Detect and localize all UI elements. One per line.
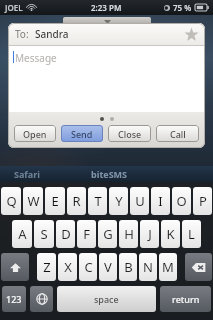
button[interactable]: R [67, 187, 86, 215]
staticText: V [104, 258, 112, 276]
button[interactable]: U [130, 187, 149, 215]
staticText: Call [170, 128, 186, 140]
staticText: E [51, 192, 59, 210]
button[interactable]: Favorite [181, 24, 201, 44]
button[interactable]: Message [8, 46, 205, 112]
staticText: JOEL [5, 2, 23, 13]
button[interactable]: L [182, 220, 201, 248]
button[interactable]: H [119, 220, 138, 248]
button[interactable]: Z [37, 253, 56, 281]
staticText: K [166, 225, 175, 243]
staticText: return [172, 293, 200, 305]
staticText: Z [43, 258, 51, 276]
button[interactable]: F [77, 220, 96, 248]
button[interactable]: D [56, 220, 75, 248]
staticText: Open [23, 128, 47, 140]
button[interactable]: Call [156, 125, 199, 142]
staticText: B [124, 258, 133, 276]
staticText: X [64, 258, 72, 276]
staticText: U [135, 192, 145, 210]
staticText: J [148, 225, 152, 243]
button[interactable]: B [119, 253, 137, 281]
button[interactable]: A [12, 220, 32, 248]
staticText: Message [15, 51, 57, 65]
button[interactable]: N [139, 253, 157, 281]
staticText: G [103, 225, 113, 243]
button[interactable]: Y [109, 187, 128, 215]
button[interactable]: Close [108, 125, 151, 142]
button[interactable]: return [160, 286, 211, 312]
staticText: space [94, 293, 119, 305]
button[interactable]: Switch keyboard [30, 286, 53, 312]
staticText: Safari [14, 168, 40, 180]
staticText: R [72, 192, 81, 210]
staticText: O [176, 192, 187, 210]
staticText: A [18, 225, 27, 243]
button[interactable]: K [161, 220, 180, 248]
button[interactable]: O [172, 187, 191, 215]
button[interactable]: Shift [1, 253, 29, 281]
staticText: W [27, 192, 40, 210]
staticText: F [83, 225, 90, 243]
staticText: P [199, 192, 207, 210]
staticText: D [61, 225, 71, 243]
button[interactable]: M [159, 253, 177, 281]
button[interactable]: Q [1, 187, 21, 215]
button[interactable]: Backspace [185, 253, 212, 281]
button[interactable]: E [45, 187, 65, 215]
button[interactable]: 123 [2, 286, 26, 312]
staticText: Send [71, 128, 93, 140]
staticText: S [40, 225, 48, 243]
staticText: biteSMS [91, 168, 128, 180]
button[interactable]: C [79, 253, 97, 281]
staticText: I [158, 192, 163, 210]
button[interactable]: G [98, 220, 117, 248]
staticText: L [188, 225, 195, 243]
button[interactable]: Open [14, 125, 56, 142]
staticText: Q [6, 192, 17, 210]
staticText: Close [118, 128, 142, 140]
button[interactable]: To: [8, 23, 205, 45]
button[interactable]: V [99, 253, 117, 281]
button[interactable]: J [140, 220, 159, 248]
button[interactable]: P [193, 187, 212, 215]
button[interactable]: Drag handle [63, 17, 151, 24]
staticText: 75 % [173, 2, 192, 13]
staticText: M [162, 258, 174, 276]
staticText: Sandra [35, 27, 69, 41]
button[interactable]: space [57, 286, 156, 312]
staticText: Y [115, 192, 123, 210]
button[interactable]: X [58, 253, 77, 281]
staticText: C [84, 258, 93, 276]
staticText: 2:23 PM [91, 2, 122, 13]
staticText: H [124, 225, 134, 243]
staticText: To: [15, 27, 29, 41]
staticText: T [94, 192, 102, 210]
button[interactable]: T [88, 187, 107, 215]
button[interactable]: W [23, 187, 43, 215]
staticText: 123 [6, 293, 22, 305]
staticText: N [143, 258, 153, 276]
button[interactable]: Send [61, 125, 103, 142]
button[interactable]: I [151, 187, 170, 215]
button[interactable]: S [34, 220, 54, 248]
